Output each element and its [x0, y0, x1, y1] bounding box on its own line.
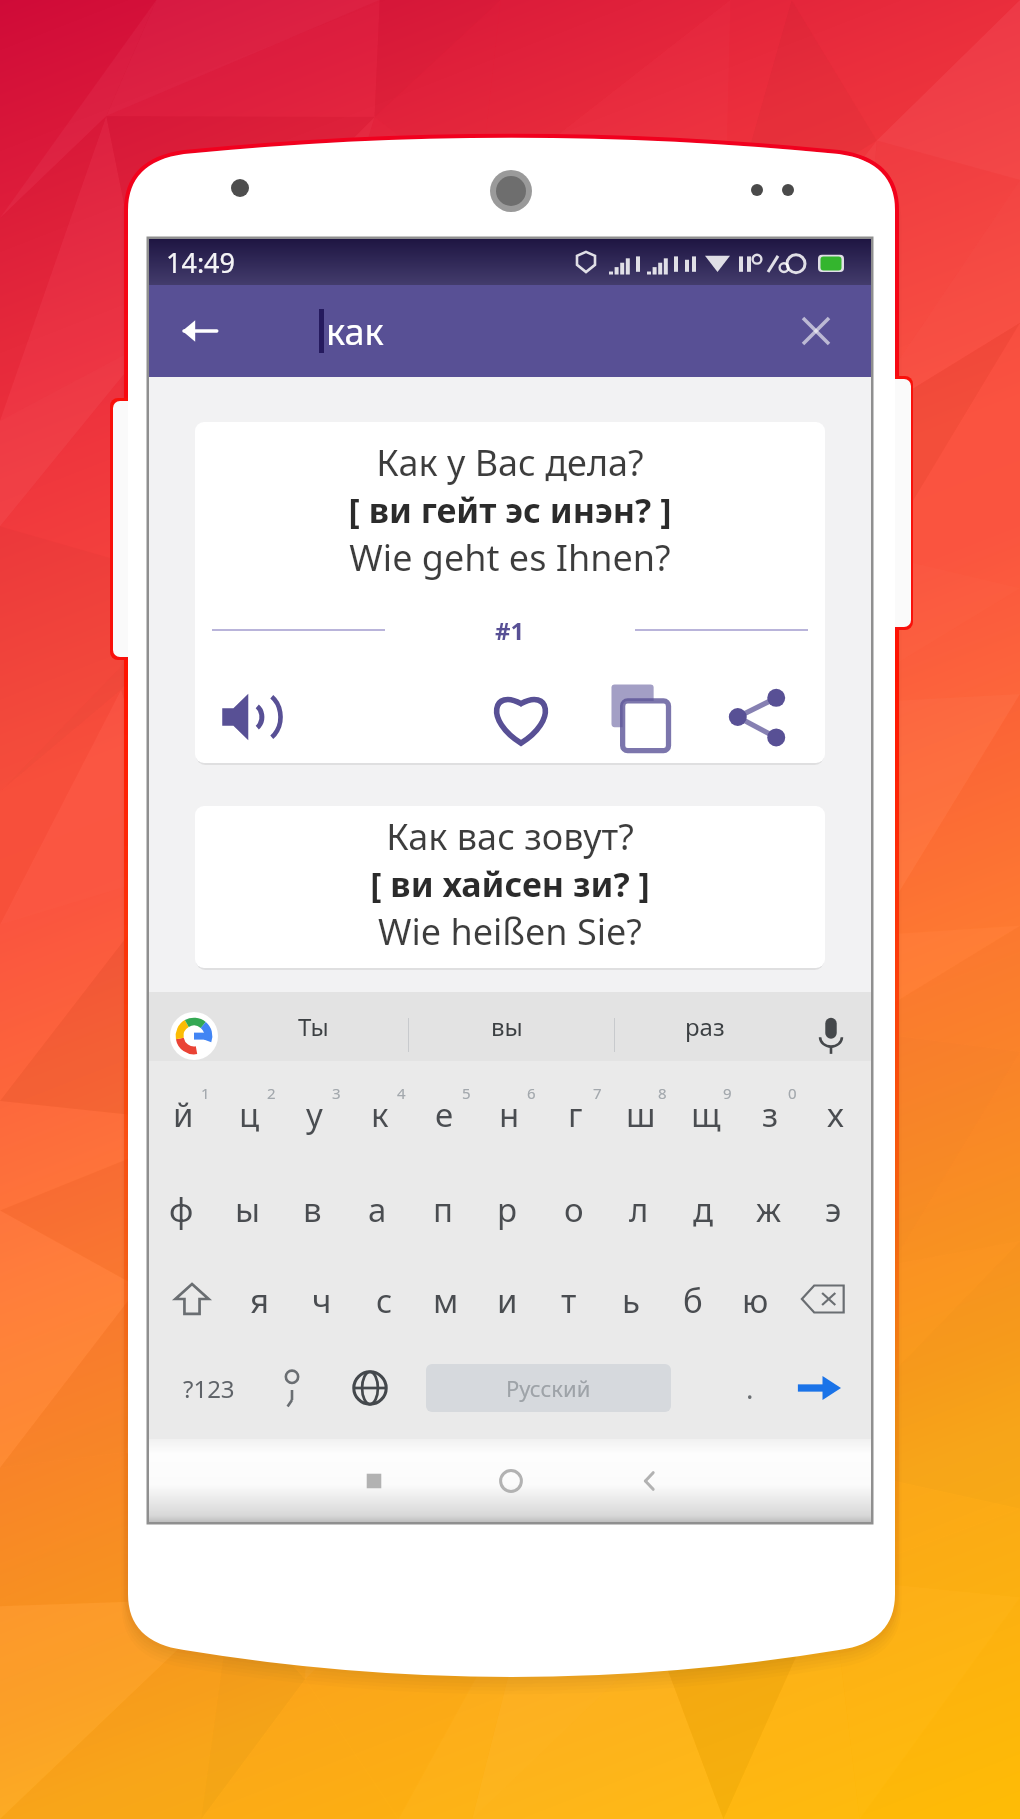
button[interactable]: б	[662, 1252, 724, 1344]
button[interactable]: к	[347, 1066, 412, 1158]
button[interactable]: ю	[724, 1252, 786, 1344]
button[interactable]: Change language	[337, 1353, 403, 1423]
button[interactable]: а	[345, 1161, 410, 1253]
button[interactable]: Back	[616, 1439, 682, 1522]
button[interactable]: з	[738, 1066, 803, 1158]
button[interactable]: Ты	[238, 992, 388, 1061]
button[interactable]: х	[803, 1066, 868, 1158]
button[interactable]: ф	[149, 1161, 214, 1253]
staticText: [ ви гейт эс инэн? ]	[195, 487, 825, 533]
staticText: п	[433, 1187, 453, 1232]
staticText: 0	[788, 1083, 797, 1103]
button[interactable]: Как вас зовут?	[195, 806, 825, 968]
button[interactable]: Share	[715, 675, 799, 759]
button[interactable]: р	[475, 1161, 540, 1253]
staticText: #1	[495, 614, 525, 647]
button[interactable]: ч	[291, 1252, 353, 1344]
button[interactable]: Recent apps	[341, 1439, 407, 1522]
button[interactable]: ж	[736, 1161, 801, 1253]
staticText: ь	[622, 1278, 640, 1323]
button[interactable]: Backspace	[785, 1263, 861, 1335]
button[interactable]: ц	[217, 1066, 282, 1158]
staticText: м	[433, 1278, 459, 1323]
button[interactable]: я	[229, 1252, 291, 1344]
staticText: как	[326, 307, 384, 356]
button[interactable]: Clear search	[783, 298, 849, 364]
button[interactable]: вы	[432, 992, 582, 1061]
staticText: в	[303, 1187, 322, 1232]
staticText: 1	[201, 1083, 210, 1103]
staticText: у	[306, 1092, 323, 1137]
button[interactable]: Google search	[168, 1010, 220, 1062]
button[interactable]: е	[412, 1066, 477, 1158]
staticText: .	[746, 1369, 754, 1407]
button[interactable]: щ	[673, 1066, 738, 1158]
button[interactable]: ы	[215, 1161, 280, 1253]
staticText: ю	[742, 1278, 769, 1323]
button[interactable]: Period	[717, 1353, 783, 1423]
staticText: вы	[491, 1010, 523, 1043]
staticText: Wie heißen Sie?	[195, 907, 825, 956]
button[interactable]: т	[538, 1252, 600, 1344]
staticText: ц	[239, 1092, 260, 1137]
staticText: ы	[235, 1187, 261, 1232]
staticText: 5	[462, 1083, 471, 1103]
staticText: Wie geht es Ihnen?	[195, 533, 825, 582]
staticText: [ ви хайсен зи? ]	[195, 861, 825, 907]
button[interactable]: Home	[478, 1439, 544, 1522]
button[interactable]: д	[671, 1161, 736, 1253]
staticText: ж	[756, 1187, 782, 1232]
button[interactable]: раз	[630, 992, 780, 1061]
staticText: 14:49	[166, 244, 236, 281]
staticText: т	[561, 1278, 577, 1323]
staticText: Русский	[506, 1373, 591, 1403]
button[interactable]: э	[801, 1161, 866, 1253]
button[interactable]: с	[353, 1252, 415, 1344]
staticText: Как вас зовут?	[195, 812, 825, 861]
staticText: ч	[312, 1278, 332, 1323]
staticText: с	[376, 1278, 393, 1323]
staticText: 2	[267, 1083, 276, 1103]
button[interactable]: Emoji and symbols	[259, 1353, 325, 1423]
button[interactable]: Как у Вас дела?	[195, 422, 825, 763]
button[interactable]: г	[543, 1066, 608, 1158]
button[interactable]: Play audio	[210, 675, 294, 759]
staticText: е	[435, 1092, 454, 1137]
staticText: х	[827, 1092, 844, 1137]
staticText: к	[371, 1092, 389, 1137]
button[interactable]: в	[280, 1161, 345, 1253]
button[interactable]: Shift	[154, 1263, 230, 1335]
button[interactable]: и	[476, 1252, 538, 1344]
staticText: г	[568, 1092, 583, 1137]
staticText: 6	[527, 1083, 536, 1103]
button[interactable]: ь	[600, 1252, 662, 1344]
button[interactable]: Enter	[777, 1353, 861, 1423]
button[interactable]: у	[282, 1066, 347, 1158]
staticText: з	[762, 1092, 779, 1137]
button[interactable]: л	[606, 1161, 671, 1253]
button[interactable]: Back	[167, 298, 233, 364]
button[interactable]: н	[477, 1066, 542, 1158]
button[interactable]: Add to favourites	[479, 675, 563, 759]
button[interactable]: Copy	[598, 675, 682, 759]
staticText: р	[497, 1187, 518, 1232]
button[interactable]: ш	[608, 1066, 673, 1158]
staticText: ф	[169, 1187, 194, 1232]
button[interactable]: Voice input	[805, 1010, 857, 1062]
button[interactable]: Русский	[426, 1364, 671, 1412]
staticText: н	[499, 1092, 520, 1137]
staticText: б	[683, 1278, 703, 1323]
staticText: э	[825, 1187, 842, 1232]
button[interactable]: й	[151, 1066, 216, 1158]
button[interactable]: ?123	[171, 1353, 247, 1423]
button[interactable]: п	[410, 1161, 475, 1253]
staticText: я	[250, 1278, 270, 1323]
staticText: д	[693, 1187, 714, 1232]
staticText: Ты	[298, 1010, 329, 1043]
staticText: 8	[658, 1083, 667, 1103]
button[interactable]: м	[415, 1252, 477, 1344]
staticText: 3	[332, 1083, 341, 1103]
button[interactable]: о	[541, 1161, 606, 1253]
staticText: й	[173, 1092, 194, 1137]
staticText: ?123	[183, 1372, 235, 1405]
